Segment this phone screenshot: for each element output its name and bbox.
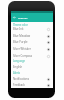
- button[interactable]: Blue Purple: [11, 39, 53, 45]
- staticText: Alerts: [13, 71, 20, 74]
- staticText: Blue Ink: [13, 27, 24, 31]
- button[interactable]: Silver Whisker: [11, 46, 53, 52]
- staticText: Silver Whisker: [13, 47, 31, 51]
- button[interactable]: English: [11, 64, 53, 70]
- button[interactable]: Feedback: [11, 82, 53, 88]
- button[interactable]: Silver Compass: [11, 53, 53, 59]
- button[interactable]: Back: [12, 15, 17, 20]
- staticText: Feedback: [13, 83, 25, 87]
- staticText: Theme color: [13, 23, 28, 26]
- button[interactable]: Blue Ink: [11, 26, 53, 32]
- staticText: Blue Meadow: [13, 34, 31, 38]
- staticText: Silver Compass: [13, 54, 33, 58]
- staticText: Notifications: [13, 77, 29, 81]
- button[interactable]: Notifications: [11, 76, 53, 82]
- button[interactable]: Blue Meadow: [11, 33, 53, 39]
- staticText: English: [13, 65, 23, 69]
- staticText: Blue Purple: [13, 40, 28, 44]
- staticText: Settings: [18, 16, 28, 19]
- staticText: Language: [13, 59, 25, 62]
